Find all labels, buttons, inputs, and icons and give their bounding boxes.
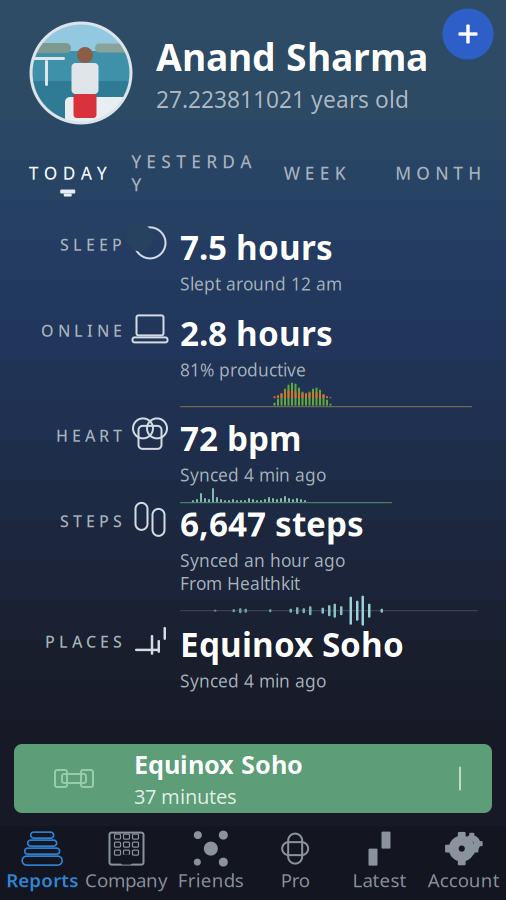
- staticText: Reports: [6, 868, 78, 892]
- staticText: Equinox Soho: [134, 747, 303, 781]
- staticText: 7.5 hours: [180, 225, 333, 269]
- button[interactable]: Latest: [337, 825, 422, 900]
- staticText: T O D A Y: [29, 161, 107, 184]
- staticText: Synced 4 min ago: [180, 669, 326, 692]
- staticText: 6,647 steps: [180, 501, 364, 546]
- staticText: Synced 4 min ago: [180, 463, 326, 486]
- button[interactable]: T O D A Y: [6, 157, 129, 201]
- button[interactable]: Friends: [169, 825, 253, 900]
- staticText: Latest: [352, 868, 406, 892]
- staticText: 27.223811021 years old: [156, 84, 409, 114]
- staticText: S L E E P: [60, 234, 122, 255]
- button[interactable]: W E E K: [253, 157, 376, 201]
- button[interactable]: Pro: [253, 825, 337, 900]
- staticText: From Healthkit: [180, 572, 300, 595]
- staticText: Anand Sharma: [156, 32, 428, 81]
- staticText: Synced an hour ago: [180, 549, 345, 572]
- staticText: 2.8 hours: [180, 311, 333, 355]
- staticText: S T E P S: [60, 510, 122, 532]
- button[interactable]: Equinox Soho: [14, 744, 492, 813]
- staticText: Slept around 12 am: [180, 272, 342, 295]
- staticText: H E A R T: [56, 425, 122, 446]
- staticText: Friends: [178, 868, 244, 892]
- staticText: Equinox Soho: [180, 622, 404, 666]
- button[interactable]: S T E P S: [0, 499, 506, 627]
- button[interactable]: Reports: [0, 825, 84, 900]
- button[interactable]: Add: [436, 2, 500, 66]
- button[interactable]: Y E S T E R D A Y: [129, 146, 253, 213]
- staticText: Company: [85, 868, 168, 892]
- button[interactable]: Account: [422, 825, 506, 900]
- staticText: 81% productive: [180, 358, 306, 381]
- staticText: Pro: [281, 868, 310, 892]
- button[interactable]: M O N T H: [376, 157, 500, 201]
- staticText: Account: [428, 868, 500, 892]
- staticText: O N L I N E: [41, 320, 122, 341]
- button[interactable]: P L A C E S: [0, 620, 506, 692]
- button[interactable]: Company: [84, 825, 169, 900]
- staticText: P L A C E S: [45, 631, 122, 652]
- button[interactable]: S L E E P: [0, 223, 506, 295]
- staticText: 37 minutes: [134, 783, 237, 810]
- staticText: M O N T H: [395, 161, 481, 184]
- button[interactable]: H E A R T: [0, 414, 506, 504]
- staticText: Y E S T E R D A Y: [131, 150, 251, 196]
- staticText: 72 bpm: [180, 416, 302, 460]
- staticText: W E E K: [284, 161, 346, 184]
- button[interactable]: O N L I N E: [0, 309, 506, 407]
